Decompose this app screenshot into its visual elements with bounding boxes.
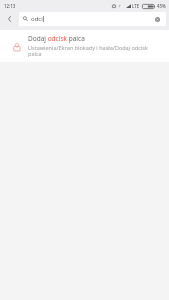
button[interactable]: odci — [19, 12, 166, 26]
staticText: 45% — [157, 3, 166, 9]
staticText: 12:13 — [4, 3, 16, 9]
staticText: odci — [31, 15, 43, 23]
button[interactable]: Back — [1, 10, 18, 27]
button[interactable]: Dodaj odcisk palca — [0, 30, 169, 62]
staticText: Dodaj odcisk palca — [28, 34, 85, 43]
staticText: LTE — [132, 3, 140, 9]
staticText: Ustawienia/Ekran blokady i hasła/Dodaj o… — [28, 44, 156, 58]
button[interactable]: Clear text — [151, 13, 163, 25]
